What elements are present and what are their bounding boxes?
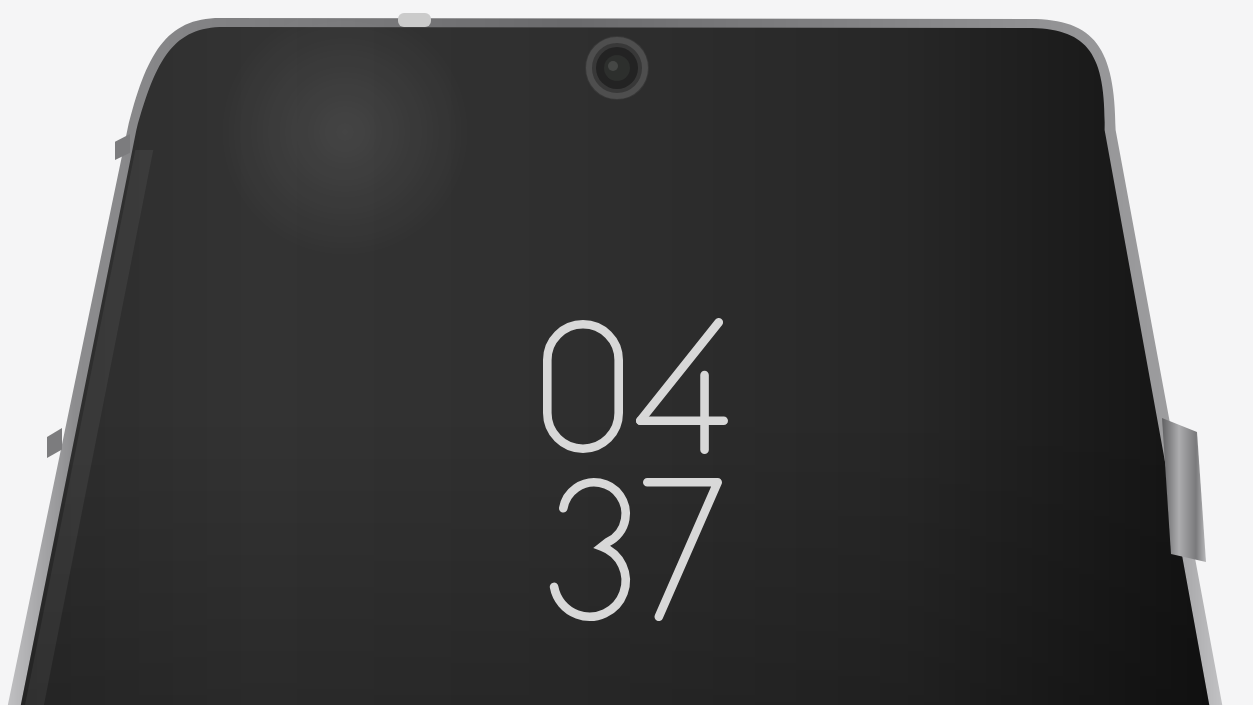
button[interactable]: Phone always-on display showing 04:37	[0, 0, 1253, 705]
